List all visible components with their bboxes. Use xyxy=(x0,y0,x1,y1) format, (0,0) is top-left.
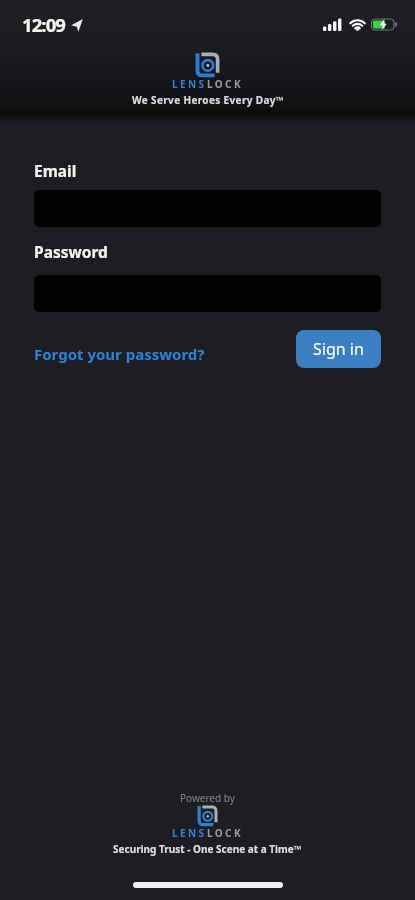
button[interactable]: Forgot your password? xyxy=(34,344,205,364)
staticText: Forgot your password? xyxy=(34,344,205,364)
staticText: Powered by xyxy=(180,791,235,805)
button[interactable]: Sign in xyxy=(296,330,381,368)
staticText: Securing Trust - One Scene at a Time™ xyxy=(113,842,302,856)
staticText: LOCK xyxy=(207,77,243,91)
staticText: We Serve Heroes Every Day™ xyxy=(132,93,284,107)
staticText: LENS xyxy=(172,826,207,840)
staticText: Password xyxy=(34,241,108,262)
staticText: LENS xyxy=(172,77,207,91)
staticText: 12:09 xyxy=(22,12,66,37)
staticText: LOCK xyxy=(207,826,243,840)
staticText: Email xyxy=(34,160,77,181)
staticText: Sign in xyxy=(313,338,364,360)
